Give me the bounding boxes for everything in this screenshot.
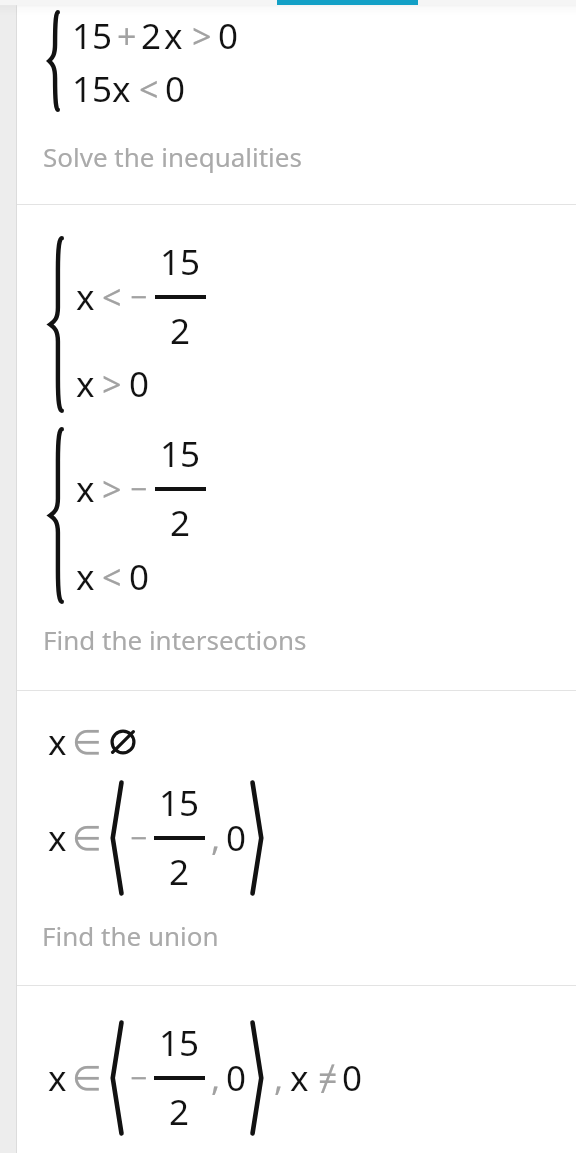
staticText: 0 — [342, 1054, 363, 1102]
staticText: x — [76, 553, 95, 601]
staticText: 2 — [170, 307, 191, 355]
staticText: 0 — [129, 360, 150, 408]
staticText: 15 — [159, 1019, 200, 1067]
staticText: − — [130, 468, 148, 509]
staticText: x — [76, 465, 95, 513]
staticText: Find the union — [42, 918, 219, 953]
staticText: ≠ — [318, 1055, 338, 1101]
staticText: x — [48, 718, 67, 766]
staticText: 0 — [165, 65, 186, 113]
staticText: 15 — [159, 779, 200, 827]
staticText: 15 — [72, 12, 113, 60]
staticText: 2 — [170, 499, 191, 547]
staticText: 0 — [218, 12, 239, 60]
staticText: > — [102, 361, 122, 407]
staticText: x — [290, 1054, 309, 1102]
staticText: , — [211, 1055, 221, 1101]
staticText: x — [76, 273, 95, 321]
staticText: 2 — [169, 1088, 190, 1136]
staticText: x — [48, 814, 67, 862]
staticText: − — [130, 276, 148, 317]
staticText: 0 — [226, 1054, 247, 1102]
staticText: 15x — [72, 65, 131, 113]
staticText: + — [117, 13, 137, 59]
staticText: 15 — [160, 430, 201, 478]
staticText: ∈ — [72, 722, 102, 762]
staticText: > — [192, 13, 212, 59]
staticText: − — [130, 817, 148, 858]
staticText: ∈ — [72, 818, 102, 858]
staticText: x — [48, 1054, 67, 1102]
staticText: > — [102, 466, 122, 512]
staticText: < — [102, 274, 122, 320]
staticText: , — [211, 815, 221, 861]
staticText: 15 — [160, 238, 201, 286]
staticText: 2 — [169, 848, 190, 896]
staticText: Find the intersections — [43, 622, 307, 657]
staticText: , — [274, 1055, 284, 1101]
staticText: x — [76, 360, 95, 408]
staticText: 0 — [226, 814, 247, 862]
staticText: < — [139, 66, 159, 112]
staticText: − — [130, 1057, 148, 1098]
staticText: Solve the inequalities — [43, 139, 302, 174]
staticText: x — [164, 12, 183, 60]
staticText: 0 — [129, 553, 150, 601]
staticText: 2 — [141, 12, 162, 60]
staticText: < — [102, 554, 122, 600]
staticText: ∈ — [72, 1058, 102, 1098]
